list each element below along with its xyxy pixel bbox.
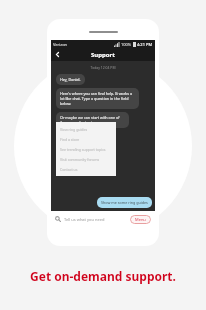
staticText: View ring guides bbox=[60, 127, 88, 132]
staticText: Or maybe we can start with one of these … bbox=[60, 115, 125, 125]
button[interactable]: Show me some ring guides bbox=[97, 197, 152, 208]
staticText: Tell us what you need bbox=[64, 217, 130, 222]
staticText: Hey, Daniel. bbox=[60, 77, 81, 82]
staticText: Verizon bbox=[53, 42, 68, 47]
staticText: 4:21 PM bbox=[137, 42, 153, 47]
other: Search bbox=[55, 216, 61, 222]
staticText: Here's where you can find help. It works… bbox=[60, 91, 135, 106]
button[interactable]: Back bbox=[52, 49, 63, 60]
button[interactable]: Menu bbox=[130, 215, 151, 224]
button[interactable]: Find a store bbox=[56, 134, 116, 144]
button[interactable]: See trending support topics bbox=[56, 144, 116, 154]
button[interactable]: View ring guides bbox=[56, 124, 116, 134]
staticText: Contact us bbox=[60, 167, 78, 172]
staticText: Visit community forums bbox=[60, 157, 100, 162]
staticText: Get on-demand support. bbox=[30, 268, 176, 284]
staticText: Support bbox=[91, 51, 115, 59]
staticText: Today 12:04 PM bbox=[51, 65, 155, 70]
staticText: Find a store bbox=[60, 137, 80, 142]
staticText: See trending support topics bbox=[60, 147, 106, 152]
staticText: Show me some ring guides bbox=[101, 200, 148, 205]
button[interactable]: Contact us bbox=[56, 164, 116, 174]
staticText: 100% bbox=[121, 42, 132, 47]
button[interactable]: Visit community forums bbox=[56, 154, 116, 164]
staticText: Menu bbox=[135, 217, 146, 222]
